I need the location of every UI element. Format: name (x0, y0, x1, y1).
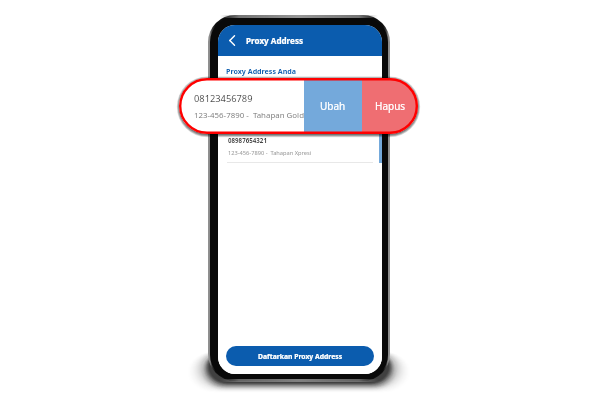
staticText: 123-456-7890 - Tahapan Xpresi (228, 149, 312, 157)
button[interactable]: Edit (379, 99, 382, 131)
staticText: Daftarkan Proxy Address (258, 352, 343, 361)
button[interactable]: Ubah (304, 78, 362, 134)
button[interactable]: 08123456789 (179, 78, 304, 134)
button[interactable]: Edit (379, 131, 382, 163)
staticText: Proxy Address Anda (226, 66, 297, 76)
button[interactable]: Back (223, 29, 241, 51)
staticText: 08123456789 (194, 92, 253, 105)
staticText: 123-456-7890 - Tahapan Gold (194, 110, 305, 121)
button[interactable]: 08987654321 (218, 131, 379, 163)
staticText: 08987654321 (228, 136, 267, 144)
staticText: 123-456-7890 - Tahapan Gold (228, 117, 308, 125)
button[interactable]: 08123456789 (218, 99, 379, 131)
staticText: Ubah (320, 99, 346, 113)
staticText: Hapus (375, 99, 406, 113)
button[interactable]: Daftarkan Proxy Address (226, 346, 374, 366)
button[interactable]: Hapus (362, 78, 418, 134)
staticText: Proxy Address (246, 35, 304, 46)
